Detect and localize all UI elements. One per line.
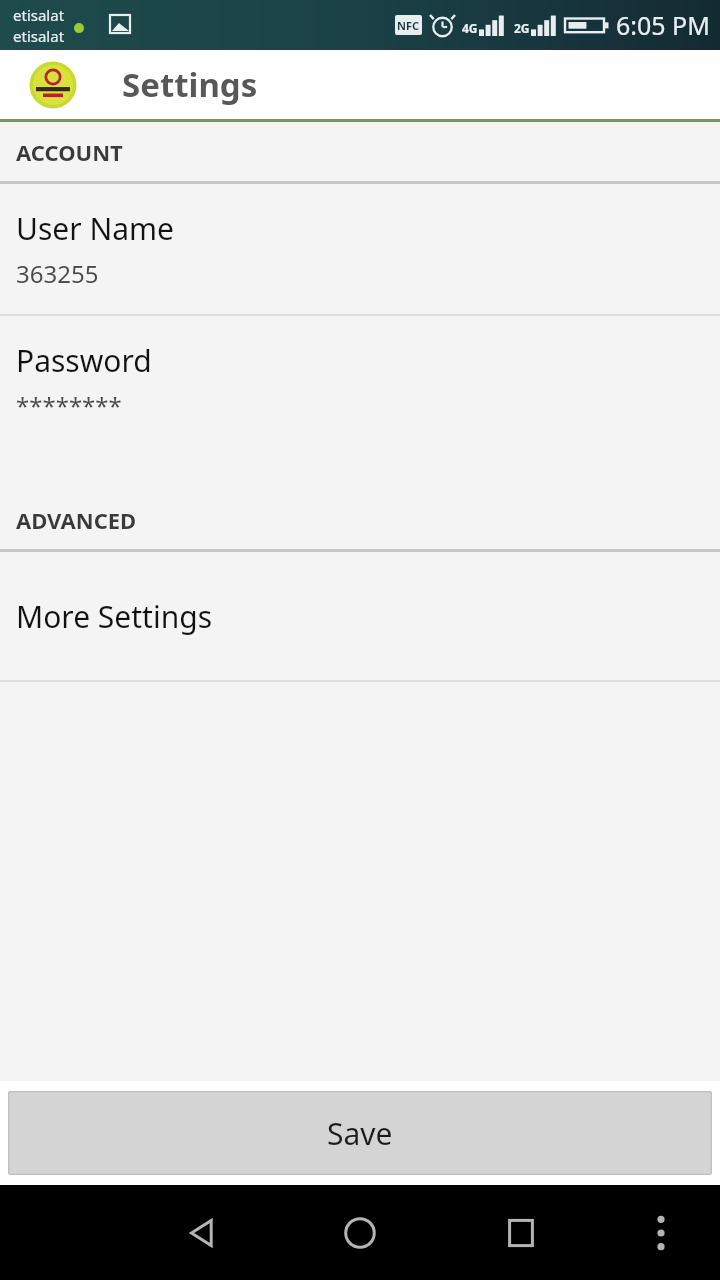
button[interactable]: More options [634, 1206, 688, 1260]
staticText: 2G [514, 20, 530, 36]
staticText: 4G [462, 20, 478, 36]
staticText: Settings [122, 62, 258, 107]
staticText: User Name [16, 208, 175, 249]
staticText: etisalat [13, 5, 65, 25]
button[interactable]: Recent apps [490, 1202, 552, 1264]
button[interactable]: App logo [28, 60, 78, 110]
staticText: NFC [397, 18, 420, 33]
button[interactable]: Home [329, 1202, 391, 1264]
button[interactable]: More Settings [0, 552, 720, 680]
staticText: Save [327, 1113, 393, 1154]
button[interactable]: Back [170, 1202, 232, 1264]
staticText: More Settings [16, 596, 213, 637]
button[interactable]: Save [8, 1091, 712, 1175]
staticText: ACCOUNT [16, 137, 123, 167]
staticText: ******** [16, 389, 122, 422]
button[interactable]: User Name [0, 184, 720, 314]
staticText: 6:05 PM [616, 8, 710, 42]
staticText: etisalat [13, 26, 65, 46]
staticText: 363255 [16, 257, 99, 290]
button[interactable]: Password [0, 316, 720, 446]
staticText: ADVANCED [16, 505, 137, 535]
staticText: Password [16, 340, 152, 381]
